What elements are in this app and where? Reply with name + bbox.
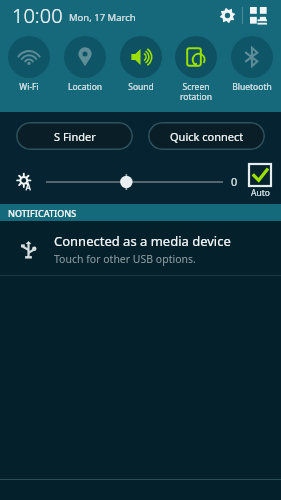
button[interactable]: Location	[58, 36, 112, 93]
staticText: Touch for other USB options.	[54, 252, 196, 266]
button[interactable]: Edit quick settings	[243, 0, 273, 30]
staticText: NOTIFICATIONS	[8, 207, 77, 219]
button[interactable]: Brightness slider	[44, 165, 225, 199]
button[interactable]: Auto brightness	[10, 167, 40, 197]
button[interactable]: Quick connect	[148, 122, 265, 150]
button[interactable]: Bluetooth	[225, 36, 279, 93]
staticText: Screen rotation	[169, 81, 223, 102]
staticText: 10:00	[12, 2, 63, 29]
staticText: Wi-Fi	[2, 81, 56, 93]
staticText: Connected as a media device	[54, 232, 231, 250]
button[interactable]: Sound	[114, 36, 168, 93]
button[interactable]: Auto	[247, 164, 273, 199]
staticText: Location	[58, 81, 112, 93]
button[interactable]: Connected as a media device	[0, 221, 281, 276]
staticText: Quick connect	[170, 129, 244, 144]
staticText: Auto	[251, 187, 270, 199]
button[interactable]: Wi-Fi	[2, 36, 56, 93]
staticText: Bluetooth	[225, 81, 279, 93]
button[interactable]: Settings	[212, 0, 242, 30]
button[interactable]: Screen rotation	[169, 36, 223, 102]
staticText: 0	[231, 174, 238, 189]
staticText: Sound	[114, 81, 168, 93]
button[interactable]: S Finder	[16, 122, 133, 150]
staticText: S Finder	[54, 129, 96, 144]
staticText: Mon, 17 March	[69, 11, 136, 24]
